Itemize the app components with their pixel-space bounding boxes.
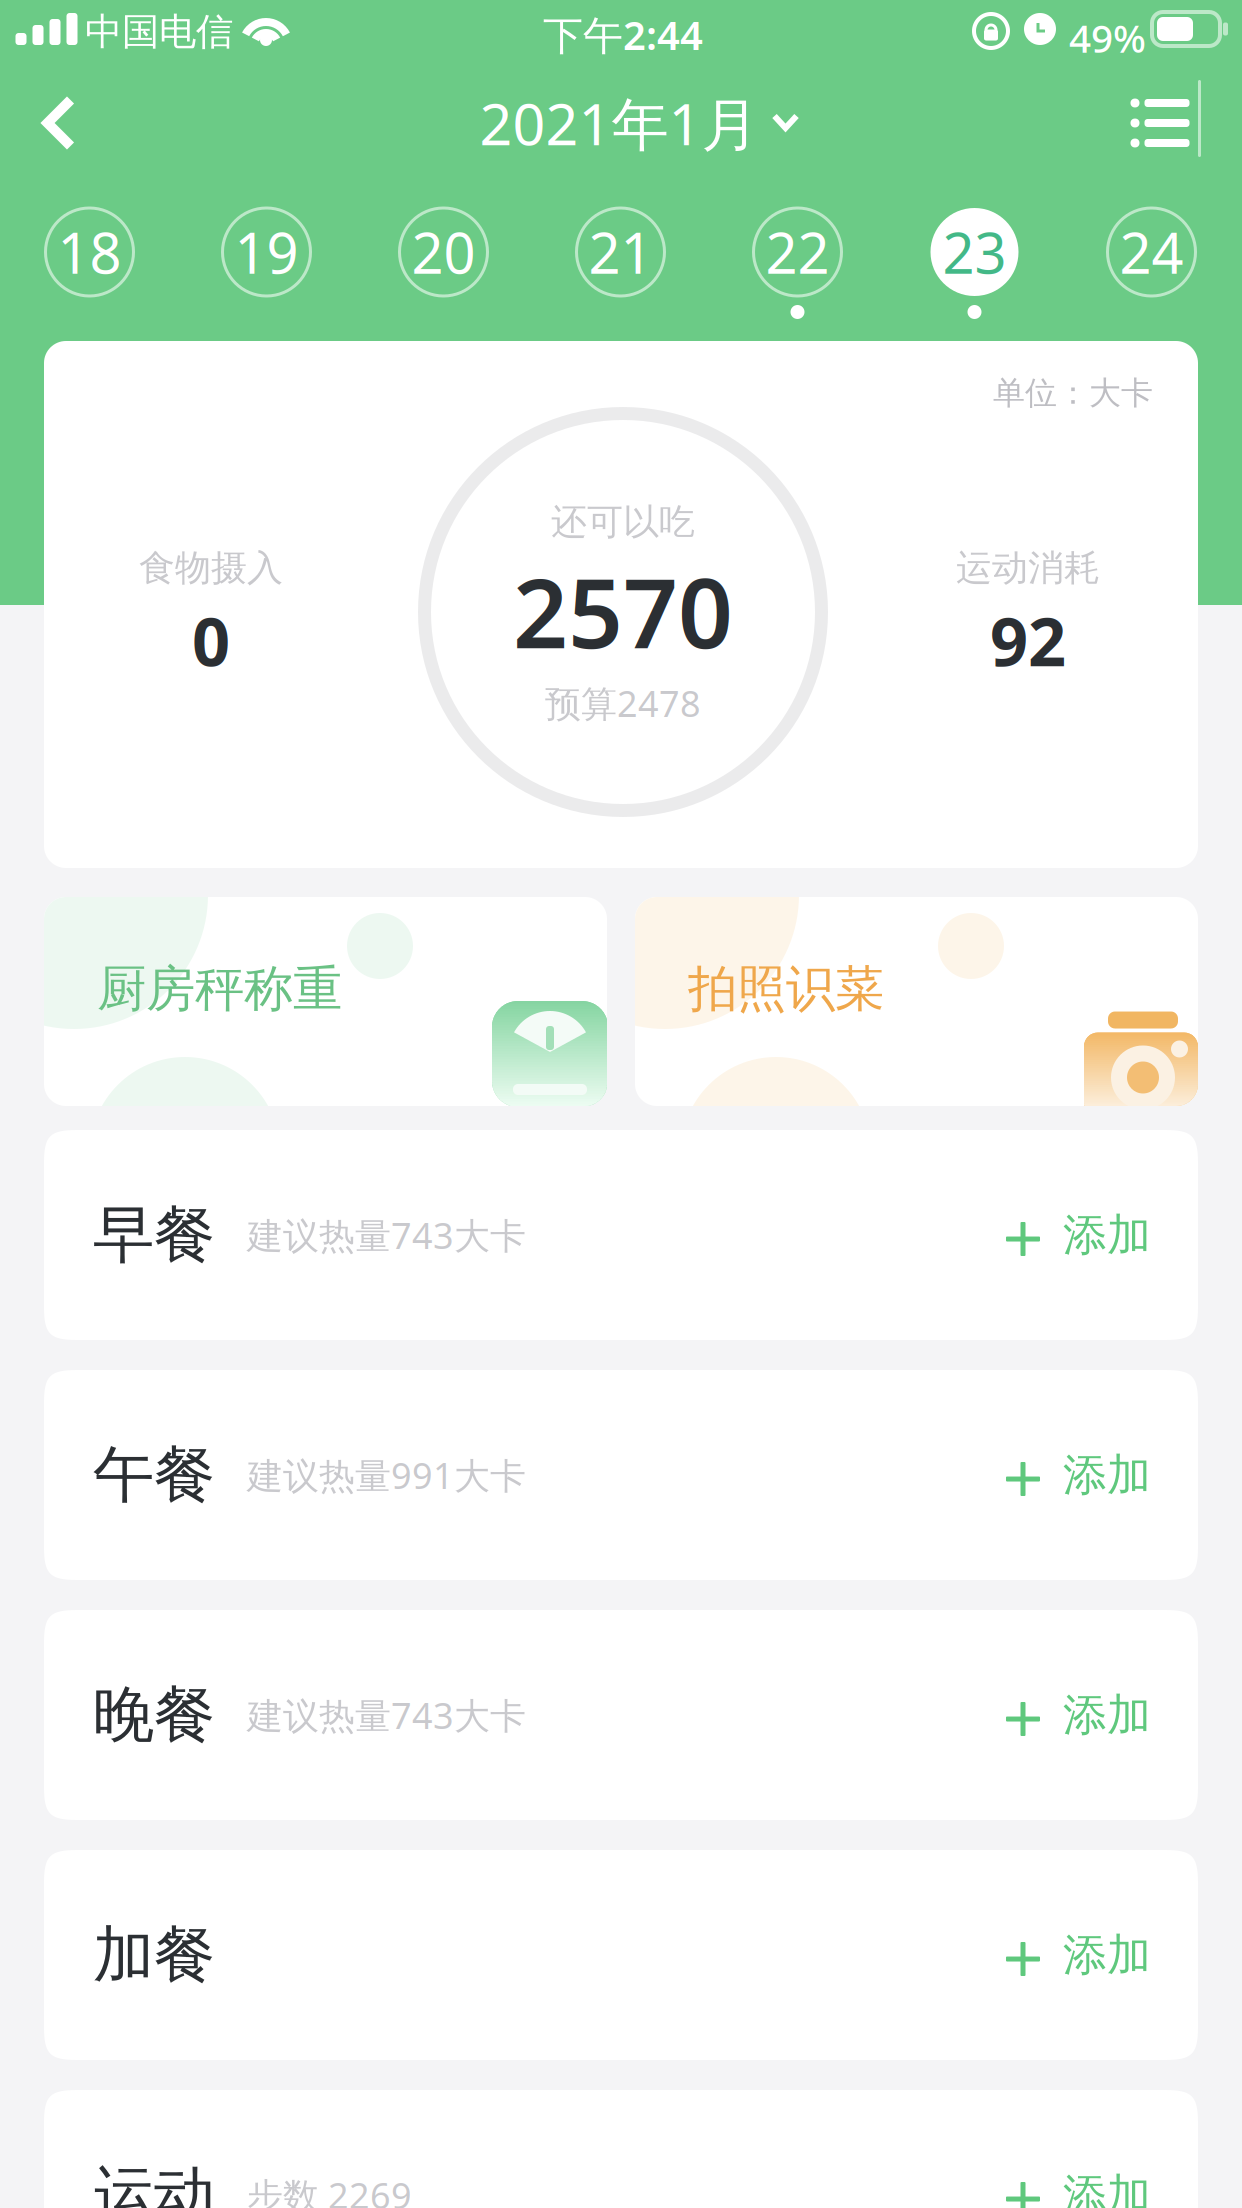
button[interactable]: 2021年1月 (470, 68, 810, 178)
button[interactable]: List view (1105, 68, 1215, 178)
button[interactable]: 24 (1063, 208, 1240, 320)
staticText: 2570 (513, 547, 733, 675)
staticText: 2021年1月 (479, 85, 758, 161)
staticText: 中国电信 (85, 9, 233, 55)
button[interactable]: 晚餐 (44, 1610, 1198, 1820)
staticText: 20 (411, 215, 475, 289)
staticText: 还可以吃 (551, 500, 695, 544)
staticText: 建议热量743大卡 (247, 1211, 526, 1259)
button[interactable]: 20 (355, 208, 532, 320)
button[interactable]: 22 (709, 208, 886, 320)
staticText: 午餐 (93, 1437, 215, 1513)
button[interactable]: 厨房秤称重 (44, 897, 607, 1106)
staticText: 24 (1119, 215, 1183, 289)
staticText: 添加 (1063, 2168, 1151, 2208)
button[interactable]: 19 (178, 208, 355, 320)
staticText: 建议热量991大卡 (247, 1451, 526, 1499)
staticText: 添加 (1063, 1448, 1151, 1502)
button[interactable]: 拍照识菜 (635, 897, 1198, 1106)
staticText: 晚餐 (93, 1677, 215, 1753)
staticText: 19 (234, 215, 298, 289)
button[interactable]: 运动 (44, 2090, 1198, 2208)
staticText: 建议热量743大卡 (247, 1691, 526, 1739)
button[interactable]: 23 (886, 208, 1063, 320)
staticText: 92 (990, 596, 1066, 685)
staticText: 食物摄入 (139, 546, 283, 590)
staticText: 早餐 (93, 1197, 215, 1273)
staticText: 添加 (1063, 1208, 1151, 1262)
staticText: 运动 (93, 2157, 215, 2208)
staticText: 18 (57, 215, 121, 289)
staticText: 22 (765, 215, 829, 289)
staticText: 添加 (1063, 1688, 1151, 1742)
staticText: 添加 (1063, 1928, 1151, 1982)
button[interactable]: 早餐 (44, 1130, 1198, 1340)
staticText: 运动消耗 (956, 546, 1100, 590)
staticText: 厨房秤称重 (97, 959, 342, 1019)
staticText: 加餐 (93, 1917, 215, 1993)
button[interactable]: 18 (1, 208, 178, 320)
staticText: 0 (192, 596, 230, 685)
staticText: 预算2478 (545, 679, 701, 727)
staticText: 49% (1069, 12, 1146, 63)
staticText: 下午2:44 (543, 8, 703, 61)
button[interactable]: 加餐 (44, 1850, 1198, 2060)
staticText: 拍照识菜 (688, 959, 884, 1019)
button[interactable]: Back (7, 68, 111, 178)
staticText: 21 (588, 215, 652, 289)
staticText: 步数 2269 (247, 2171, 412, 2208)
staticText: 23 (942, 215, 1006, 289)
staticText: 单位：大卡 (993, 373, 1153, 413)
button[interactable]: 21 (532, 208, 709, 320)
button[interactable]: 午餐 (44, 1370, 1198, 1580)
